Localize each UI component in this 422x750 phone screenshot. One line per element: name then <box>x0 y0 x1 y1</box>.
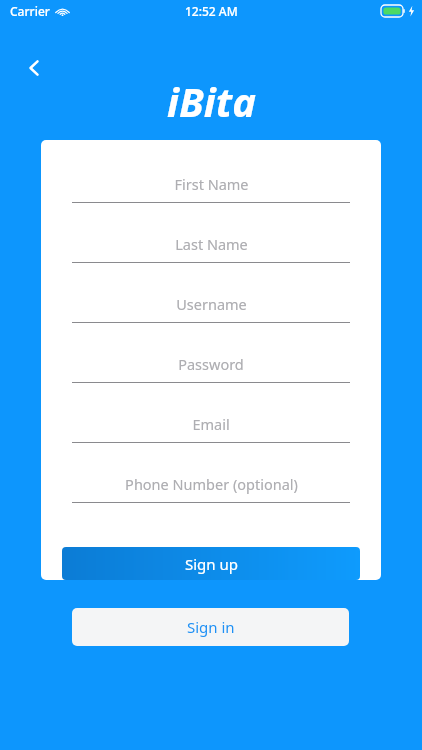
button[interactable]: Sign up <box>62 547 360 580</box>
staticText: Phone Number (optional) <box>125 474 298 494</box>
staticText: Sign up <box>185 554 238 574</box>
staticText: 12:52 AM <box>185 3 238 19</box>
button[interactable]: Username <box>41 286 381 322</box>
staticText: Username <box>176 294 247 314</box>
button[interactable]: Email <box>41 406 381 442</box>
staticText: iBita <box>167 74 256 122</box>
staticText: Password <box>178 354 244 374</box>
staticText: Last Name <box>175 234 248 254</box>
button[interactable]: Password <box>41 346 381 382</box>
staticText: First Name <box>174 174 249 194</box>
button[interactable]: Last Name <box>41 226 381 262</box>
button[interactable]: Phone Number (optional) <box>41 466 381 502</box>
staticText: Sign in <box>187 617 235 637</box>
staticText: Email <box>192 414 230 434</box>
button[interactable]: First Name <box>41 166 381 202</box>
button[interactable]: Sign in <box>72 608 349 646</box>
button[interactable]: Back <box>12 46 56 90</box>
staticText: Carrier <box>10 3 50 19</box>
